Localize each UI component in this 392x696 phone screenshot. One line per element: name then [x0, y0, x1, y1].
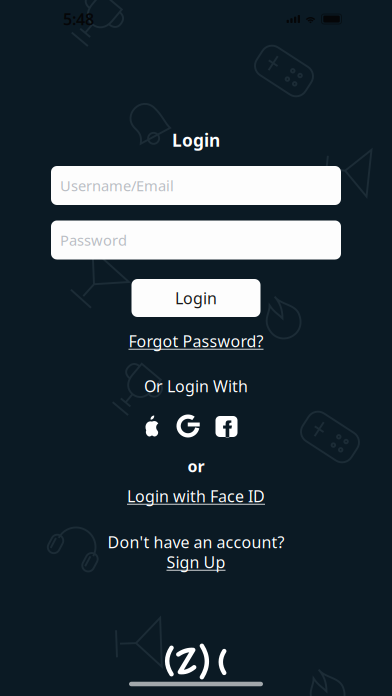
staticText: Don't have an account?: [107, 531, 284, 553]
button[interactable]: Username/Email: [51, 166, 341, 205]
staticText: 5:48: [63, 8, 94, 30]
staticText: Login: [172, 128, 220, 151]
staticText: Or Login With: [144, 375, 248, 397]
button[interactable]: Password: [51, 220, 341, 259]
staticText: Login with Face ID: [127, 485, 265, 507]
button[interactable]: Sign in with Apple: [143, 414, 160, 438]
button[interactable]: Login with Face ID: [127, 487, 265, 505]
staticText: or: [187, 455, 204, 477]
staticText: Password: [60, 230, 127, 250]
button[interactable]: Login: [131, 279, 260, 317]
staticText: Forgot Password?: [128, 330, 263, 352]
button[interactable]: Forgot Password?: [128, 332, 263, 350]
staticText: Sign Up: [166, 551, 225, 573]
button[interactable]: Sign in with Facebook: [215, 415, 237, 437]
button[interactable]: Sign Up: [166, 553, 225, 571]
staticText: Login: [175, 287, 217, 309]
button[interactable]: Sign in with Google: [176, 414, 199, 437]
staticText: Username/Email: [60, 176, 174, 195]
